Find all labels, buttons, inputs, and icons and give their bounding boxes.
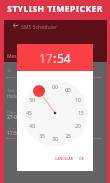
- button[interactable]: 54: [57, 50, 71, 66]
- button[interactable]: 17: [39, 50, 53, 66]
- staticText: 17:54: [7, 130, 20, 137]
- staticText: Date: [7, 110, 16, 115]
- button[interactable]: Back: [13, 23, 18, 28]
- staticText: 15: [78, 110, 84, 117]
- staticText: 30: [52, 136, 58, 143]
- staticText: 55: [39, 87, 45, 94]
- staticText: 35: [39, 133, 45, 140]
- staticText: 50: [29, 97, 35, 104]
- staticText: 25: [65, 133, 71, 140]
- staticText: 05: [65, 87, 71, 94]
- staticText: OK: [79, 156, 84, 160]
- staticText: Message: [7, 53, 28, 60]
- staticText: :: [53, 50, 57, 66]
- staticText: 40: [29, 123, 35, 130]
- button[interactable]: OK: [77, 154, 86, 162]
- staticText: 45: [26, 110, 32, 117]
- staticText: 27-04-2017: [7, 114, 34, 121]
- staticText: 10: [75, 97, 81, 104]
- staticText: Text message: [7, 88, 33, 93]
- staticText: STYLISH TIMEPICKER: [0, 3, 110, 15]
- staticText: SMS Scheduler: [21, 23, 58, 30]
- staticText: 00: [52, 84, 58, 91]
- staticText: CANCELAR: [55, 156, 73, 160]
- staticText: To: [7, 68, 12, 73]
- button[interactable]: CANCELAR: [53, 154, 75, 162]
- staticText: Time: [7, 126, 17, 131]
- staticText: 20: [75, 123, 81, 130]
- staticText: Hola: [7, 93, 18, 100]
